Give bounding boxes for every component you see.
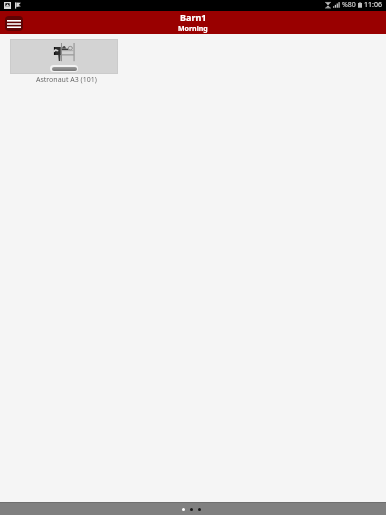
button[interactable]: Open navigation menu bbox=[5, 16, 23, 31]
staticText: Barn1 bbox=[180, 11, 207, 23]
staticText: 11:06 bbox=[364, 0, 382, 10]
button[interactable]: Page 3 bbox=[198, 508, 201, 511]
staticText: Astronaut A3 (101) bbox=[36, 75, 97, 85]
staticText: %80 bbox=[342, 0, 356, 10]
staticText: Morning bbox=[178, 24, 208, 34]
button[interactable]: Astronaut A3 (101) bbox=[10, 39, 118, 85]
button[interactable]: Page 2 bbox=[190, 508, 193, 511]
button[interactable]: Page 1, current page bbox=[182, 508, 185, 511]
